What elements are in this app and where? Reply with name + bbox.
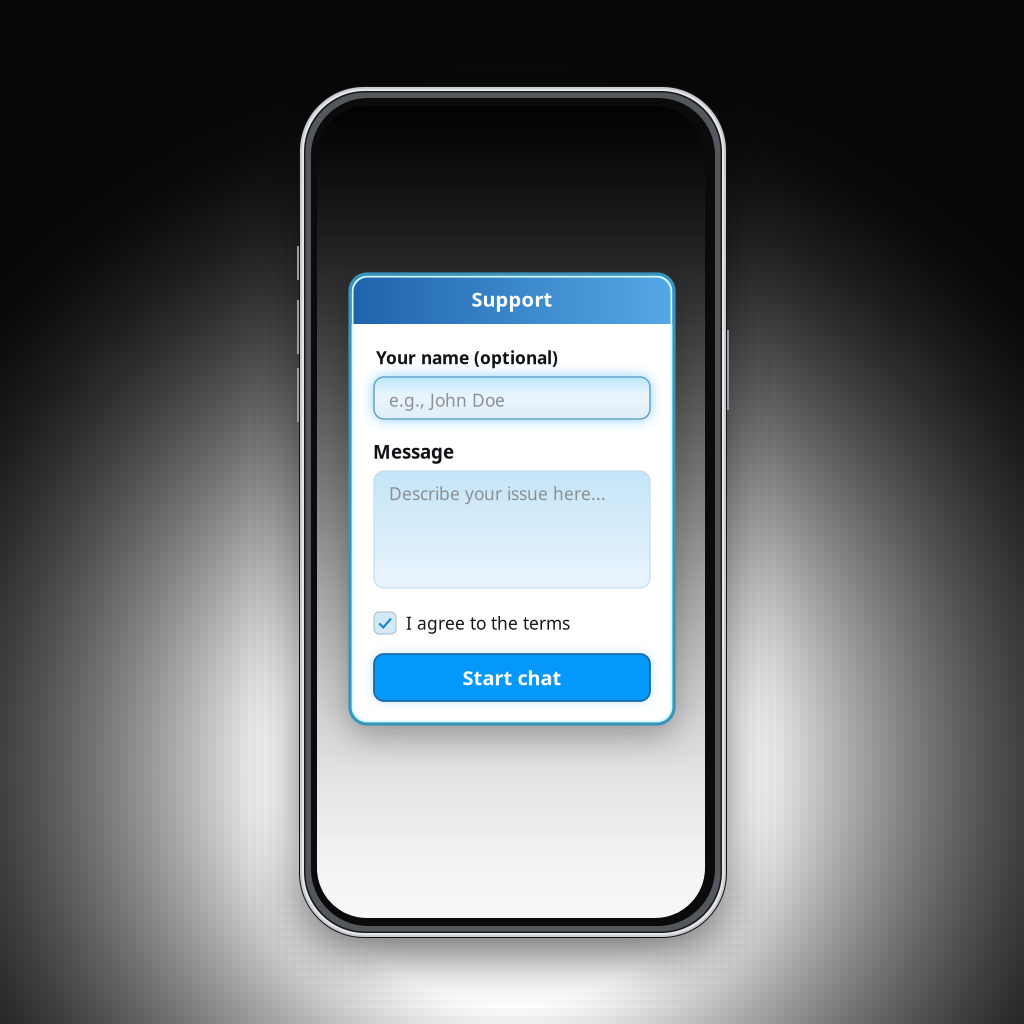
staticText: Support — [471, 286, 552, 312]
staticText: Your name (optional) — [376, 346, 558, 369]
staticText: e.g., John Doe — [389, 388, 505, 411]
staticText: Describe your issue here... — [389, 482, 606, 505]
button[interactable]: Start chat — [374, 654, 650, 701]
staticText: Message — [373, 439, 454, 464]
staticText: Start chat — [462, 664, 561, 691]
button[interactable]: I agree to the terms — [374, 611, 650, 635]
staticText: I agree to the terms — [406, 611, 570, 634]
